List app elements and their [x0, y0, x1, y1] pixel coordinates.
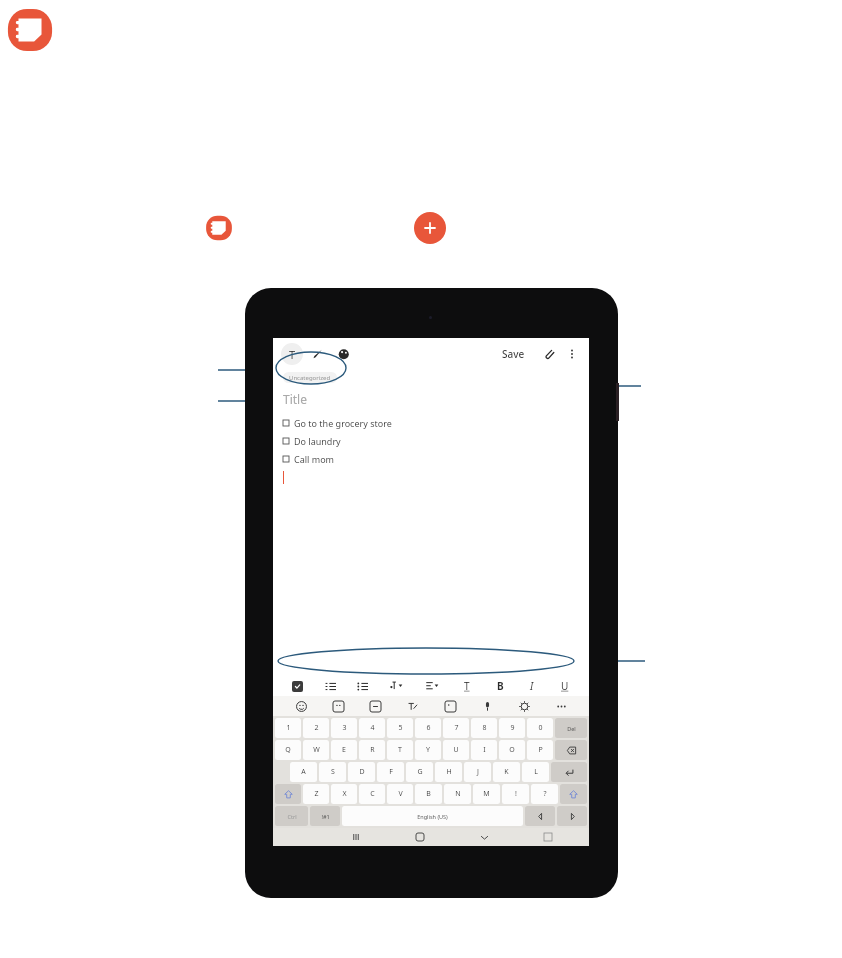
button[interactable]: 7 — [443, 718, 469, 738]
staticText: 0 — [538, 723, 543, 733]
staticText: E — [342, 745, 346, 755]
button[interactable]: Alignment — [423, 676, 443, 696]
button[interactable]: I — [471, 740, 497, 760]
staticText: O — [509, 745, 515, 755]
button[interactable]: O — [499, 740, 525, 760]
button[interactable]: 3 — [331, 718, 357, 738]
button[interactable]: I — [524, 678, 540, 694]
button[interactable]: Settings — [515, 697, 533, 715]
button[interactable]: 2 — [303, 718, 329, 738]
button[interactable]: Brush — [333, 343, 355, 365]
button[interactable]: 0 — [527, 718, 553, 738]
button[interactable]: G — [406, 762, 433, 782]
button[interactable]: Image — [441, 697, 459, 715]
button[interactable]: Text mode — [281, 343, 303, 365]
button[interactable]: E — [331, 740, 357, 760]
button[interactable]: Stickers — [329, 697, 347, 715]
button[interactable]: 5 — [387, 718, 413, 738]
button[interactable]: Checklist — [289, 678, 305, 694]
button[interactable]: Handwriting — [403, 697, 421, 715]
button[interactable]: R — [359, 740, 385, 760]
button[interactable]: M — [473, 784, 500, 804]
staticText: 6 — [426, 723, 431, 733]
button[interactable]: Create note — [414, 212, 446, 244]
staticText: S — [331, 767, 335, 777]
button[interactable]: S — [319, 762, 346, 782]
button[interactable]: A — [290, 762, 317, 782]
button[interactable]: Del — [555, 718, 587, 738]
button[interactable]: V — [387, 784, 413, 804]
button[interactable]: J — [464, 762, 491, 782]
button[interactable]: Y — [415, 740, 441, 760]
button[interactable]: H — [435, 762, 462, 782]
staticText: I — [530, 679, 534, 693]
button[interactable]: Q — [275, 740, 301, 760]
button[interactable]: Back — [476, 829, 492, 845]
button[interactable] — [525, 806, 555, 826]
button[interactable]: Go to the grocery store — [273, 414, 589, 432]
button[interactable]: Hide keyboard — [540, 829, 556, 845]
button[interactable] — [560, 784, 587, 804]
button[interactable]: Call mom — [273, 450, 589, 468]
staticText: Go to the grocery store — [294, 417, 392, 429]
button[interactable]: ! — [502, 784, 529, 804]
button[interactable]: Text color — [459, 678, 475, 694]
button[interactable]: Bulleted list — [354, 678, 370, 694]
staticText: Z — [314, 789, 319, 799]
button[interactable]: L — [522, 762, 549, 782]
button[interactable]: 4 — [359, 718, 385, 738]
button[interactable] — [275, 784, 301, 804]
button[interactable]: Emoji — [292, 697, 310, 715]
button[interactable]: D — [348, 762, 375, 782]
button[interactable]: Ctrl — [275, 806, 308, 826]
button[interactable]: K — [493, 762, 520, 782]
button[interactable]: More — [552, 697, 570, 715]
button[interactable]: GIF — [366, 697, 384, 715]
button[interactable]: T — [387, 740, 413, 760]
staticText: Title — [283, 391, 307, 407]
button[interactable]: U — [443, 740, 469, 760]
button[interactable]: Z — [303, 784, 329, 804]
staticText: T — [289, 347, 296, 362]
staticText: Del — [567, 725, 576, 732]
button[interactable] — [557, 806, 587, 826]
button[interactable]: P — [527, 740, 553, 760]
button[interactable]: X — [331, 784, 357, 804]
button[interactable]: English (US) — [342, 806, 523, 826]
button[interactable]: ? — [531, 784, 558, 804]
button[interactable]: W — [303, 740, 329, 760]
button[interactable]: Voice input — [478, 697, 496, 715]
button[interactable]: 9 — [499, 718, 525, 738]
button[interactable]: 1 — [275, 718, 301, 738]
button[interactable]: Save — [498, 345, 529, 363]
button[interactable]: !#1 — [310, 806, 340, 826]
button[interactable]: 6 — [415, 718, 441, 738]
button[interactable]: C — [359, 784, 385, 804]
button[interactable]: B — [415, 784, 442, 804]
button[interactable]: F — [377, 762, 404, 782]
button[interactable]: Home — [412, 829, 428, 845]
button[interactable] — [555, 740, 587, 760]
button[interactable]: Uncategorized — [283, 372, 337, 383]
button[interactable]: Pen — [307, 343, 329, 365]
staticText: N — [455, 789, 461, 799]
button[interactable]: Attach — [539, 344, 559, 364]
button[interactable]: 8 — [471, 718, 497, 738]
staticText: !#1 — [321, 813, 330, 820]
button[interactable]: More options — [563, 345, 581, 363]
staticText: U — [561, 679, 569, 693]
button[interactable]: N — [444, 784, 471, 804]
staticText: H — [446, 767, 452, 777]
button[interactable]: B — [492, 678, 508, 694]
staticText: 3 — [342, 723, 347, 733]
staticText: English (US) — [417, 813, 448, 820]
button[interactable]: Recents — [348, 829, 364, 845]
staticText: 9 — [510, 723, 515, 733]
button[interactable]: Do laundry — [273, 432, 589, 450]
button[interactable] — [551, 762, 587, 782]
button[interactable]: Numbered list — [322, 678, 338, 694]
staticText: F — [389, 767, 393, 777]
button[interactable]: Text size — [387, 676, 407, 696]
button[interactable]: U — [557, 678, 573, 694]
staticText: 5 — [398, 723, 403, 733]
